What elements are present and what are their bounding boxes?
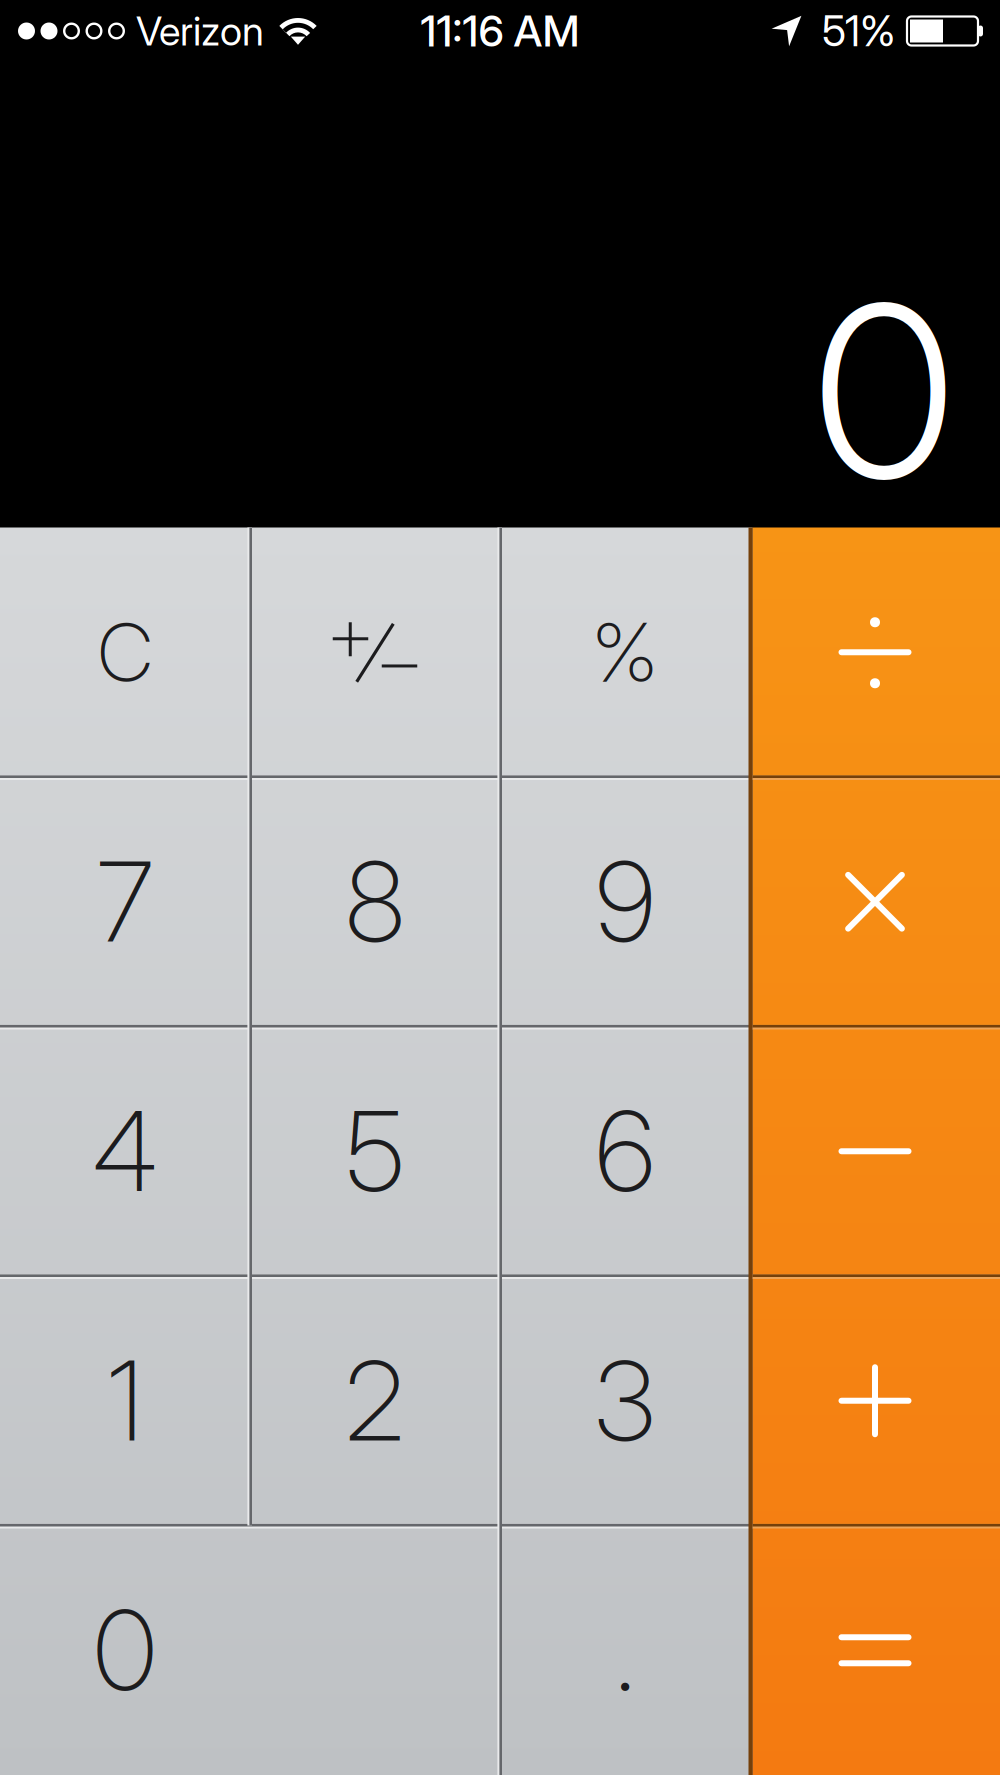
- staticText: 3: [594, 1335, 655, 1467]
- button[interactable]: 7: [0, 777, 250, 1026]
- staticText: 2: [345, 1335, 405, 1467]
- staticText: 11:16 AM: [420, 5, 579, 57]
- staticText: 9: [595, 836, 654, 968]
- button[interactable]: Clear: [0, 527, 250, 777]
- button[interactable]: 6: [500, 1026, 750, 1276]
- staticText: 1: [107, 1335, 142, 1467]
- button[interactable]: 0: [0, 1525, 500, 1775]
- button[interactable]: 8: [250, 777, 500, 1026]
- button[interactable]: Multiply: [750, 777, 1000, 1026]
- button[interactable]: Percent: [500, 527, 750, 777]
- button[interactable]: Minus: [750, 1026, 1000, 1276]
- button[interactable]: Plus minus: [250, 527, 500, 777]
- staticText: C: [97, 603, 152, 701]
- button[interactable]: 1: [0, 1276, 250, 1525]
- staticText: %: [592, 603, 658, 701]
- button[interactable]: 5: [250, 1026, 500, 1276]
- staticText: 5: [346, 1085, 404, 1217]
- staticText: Verizon: [136, 7, 264, 55]
- staticText: 8: [345, 836, 404, 968]
- staticText: 7: [97, 836, 153, 968]
- button[interactable]: 3: [500, 1276, 750, 1525]
- staticText: .: [614, 1584, 636, 1716]
- button[interactable]: Equals: [750, 1525, 1000, 1775]
- staticText: 51%: [822, 6, 895, 56]
- button[interactable]: 2: [250, 1276, 500, 1525]
- staticText: 4: [92, 1085, 157, 1217]
- button[interactable]: 9: [500, 777, 750, 1026]
- button[interactable]: Decimal point: [500, 1525, 750, 1775]
- staticText: 0: [813, 247, 955, 535]
- staticText: 6: [595, 1085, 654, 1217]
- button[interactable]: 4: [0, 1026, 250, 1276]
- button[interactable]: Plus: [750, 1276, 1000, 1525]
- staticText: 0: [93, 1584, 156, 1716]
- button[interactable]: Divide: [750, 527, 1000, 777]
